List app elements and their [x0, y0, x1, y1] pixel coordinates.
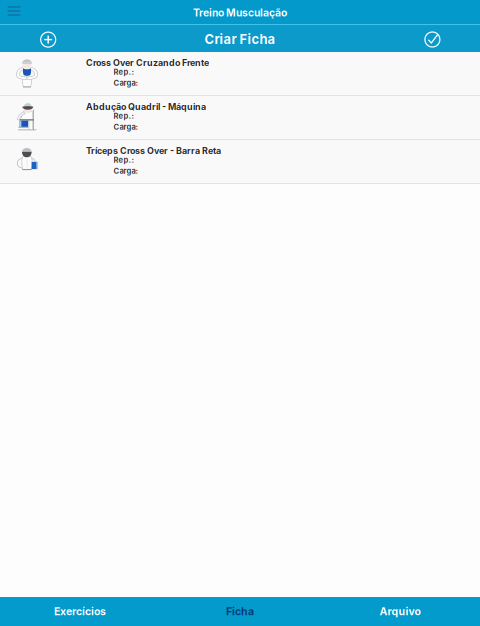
staticText: Carga: — [114, 122, 139, 132]
staticText: Treino Musculação — [193, 6, 287, 19]
button[interactable]: Menu — [1, 0, 27, 22]
staticText: Carga: — [114, 78, 139, 88]
button[interactable]: Ficha — [160, 597, 320, 626]
staticText: Exercícios — [54, 605, 106, 618]
staticText: Carga: — [114, 166, 139, 176]
staticText: Criar Ficha — [204, 31, 275, 47]
staticText: Rep.: — [114, 155, 135, 165]
button[interactable]: Arquivo — [320, 597, 480, 626]
staticText: Ficha — [226, 605, 254, 618]
staticText: Arquivo — [379, 605, 420, 618]
button[interactable]: Tríceps Cross Over - Barra Reta — [0, 140, 480, 183]
staticText: Rep.: — [114, 67, 135, 77]
staticText: Rep.: — [114, 111, 135, 121]
button[interactable]: Cross Over Cruzando Frente — [0, 52, 480, 95]
staticText: Cross Over Cruzando Frente — [86, 57, 209, 68]
button[interactable]: Adicionar exercício — [33, 28, 63, 52]
staticText: Abdução Quadril - Máquina — [86, 101, 206, 112]
button[interactable]: Abdução Quadril - Máquina — [0, 96, 480, 139]
staticText: Tríceps Cross Over - Barra Reta — [86, 145, 221, 156]
button[interactable]: Salvar ficha — [417, 27, 447, 51]
button[interactable]: Exercícios — [0, 597, 160, 626]
